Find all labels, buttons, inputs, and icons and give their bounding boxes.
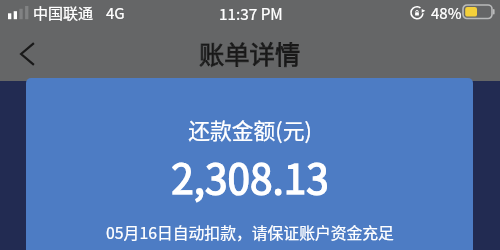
staticText: 2,308.13	[171, 147, 329, 206]
staticText: 4G	[106, 2, 125, 24]
other: Rotation lock	[410, 5, 425, 20]
staticText: 11:37 PM	[219, 2, 283, 24]
staticText: 2,308.13	[171, 147, 329, 206]
staticText: 中国联通	[33, 2, 94, 24]
button[interactable]: 还款金额(元)	[26, 78, 473, 250]
staticText: 48%	[431, 2, 462, 24]
staticText: 还款金额(元)	[188, 114, 312, 146]
staticText: 05月16日自动扣款，请保证账户资金充足	[106, 221, 394, 244]
staticText: 账单详情	[199, 35, 301, 72]
staticText: 账单详情	[199, 35, 301, 72]
button[interactable]: Back	[8, 35, 46, 73]
